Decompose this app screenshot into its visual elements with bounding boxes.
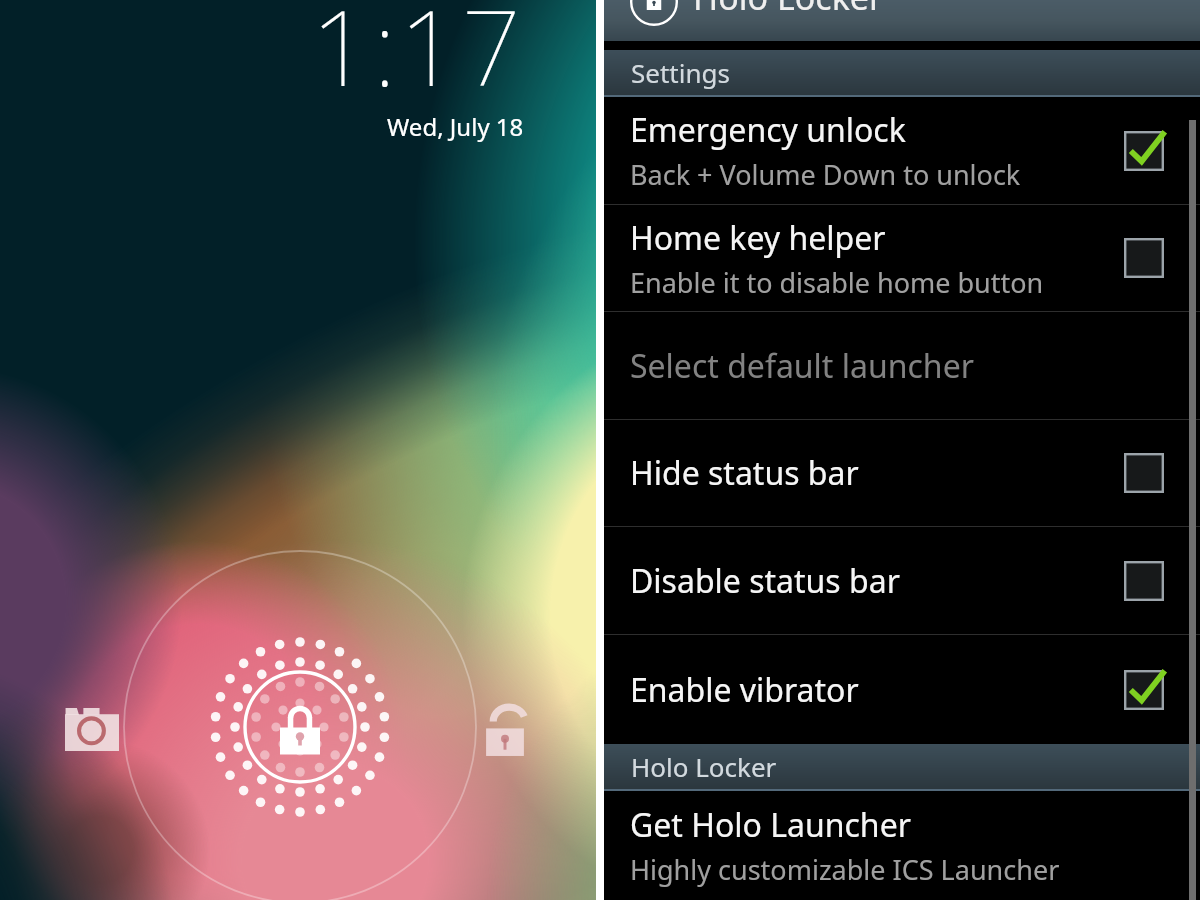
staticText: Highly customizable ICS Launcher [630,851,1060,888]
staticText: Holo Locker [631,749,777,784]
staticText: Enable it to disable home button [630,264,1044,301]
button[interactable]: Hide status bar [604,420,1200,526]
staticText: Disable status bar [630,559,900,603]
staticText: Select default launcher [630,344,974,388]
staticText: Settings [631,55,730,90]
button[interactable]: Home key helper [604,205,1200,311]
staticText: Emergency unlock [630,108,906,152]
button[interactable]: Camera [65,708,119,751]
staticText: Hide status bar [630,451,859,495]
button[interactable]: Enable vibrator [604,635,1200,744]
button[interactable]: Get Holo Launcher [604,791,1200,900]
staticText: Holo Locker [693,0,884,15]
staticText: Wed, July 18 [387,110,524,143]
staticText: 1:17 [311,0,524,117]
button[interactable]: Emergency unlock [604,97,1200,204]
staticText: Enable vibrator [630,668,859,712]
button[interactable]: Disable status bar [604,527,1200,634]
staticText: Back + Volume Down to unlock [630,156,1021,193]
button[interactable]: Select default launcher [604,312,1200,419]
staticText: Home key helper [630,216,886,260]
button[interactable]: Unlock [484,705,526,757]
button[interactable]: Holo Locker [604,0,1200,41]
staticText: Get Holo Launcher [630,803,911,847]
